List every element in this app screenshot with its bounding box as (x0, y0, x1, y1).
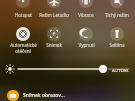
button[interactable]: Vibrace (79, 0, 93, 8)
button[interactable]: Brightness (0, 60, 135, 78)
button[interactable]: Snímek obrazov... (0, 90, 135, 101)
staticText: Režim Letadlo (39, 12, 69, 18)
button[interactable]: Automatické otáčení (16, 27, 30, 41)
button[interactable]: Snímek (47, 27, 61, 41)
staticText: AUTOM. (112, 67, 130, 73)
staticText: Snímek obrazov... (23, 92, 65, 99)
staticText: Automatické (10, 42, 37, 48)
staticText: Hotspot (15, 12, 32, 18)
staticText: otáčení (15, 48, 31, 54)
button[interactable]: Svítilna (110, 27, 124, 41)
button[interactable]: Tichý režim (110, 0, 124, 8)
staticText: Vypnutí (78, 42, 95, 48)
staticText: Vibrace (78, 12, 94, 18)
button[interactable]: Režim Letadlo (47, 0, 61, 8)
button[interactable]: Hotspot (16, 0, 30, 8)
staticText: Snímek (46, 42, 62, 48)
staticText: Svítilna (109, 42, 125, 48)
button[interactable]: Vypnutí (79, 27, 93, 41)
staticText: Tichý režim (105, 12, 129, 18)
